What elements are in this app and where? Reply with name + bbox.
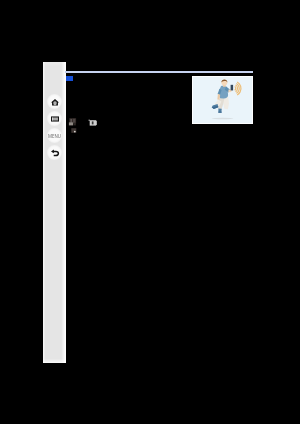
- button[interactable]: Back: [47, 145, 62, 160]
- button[interactable]: Cast illustration: [192, 76, 253, 124]
- button[interactable]: Screen: [47, 111, 62, 126]
- button[interactable]: MENU: [47, 128, 62, 143]
- button[interactable]: Home: [47, 94, 62, 109]
- staticText: MENU: [48, 133, 61, 139]
